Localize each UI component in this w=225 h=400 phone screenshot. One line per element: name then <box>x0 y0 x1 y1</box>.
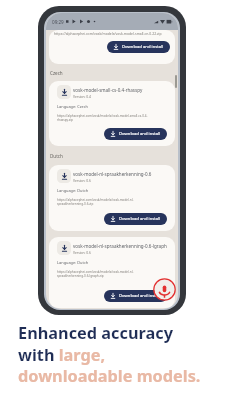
staticText: Version: 0.6 <box>73 178 91 182</box>
staticText: vosk-model-nl-spraakherkenning-0.6 <box>73 171 152 177</box>
staticText: Language: Dutch <box>57 188 89 193</box>
button[interactable]: Voice input <box>153 278 176 301</box>
staticText: vosk-model-nl-spraakherkenning-0.6-lgrap… <box>73 243 167 249</box>
staticText: Download and install <box>119 293 161 299</box>
button[interactable]: https://alphacephei.com/vosk/models/vosk… <box>49 30 175 64</box>
staticText: https://alphacephei.com/vosk/models/vosk… <box>57 114 158 122</box>
staticText: Version: 0.6 <box>73 250 91 254</box>
staticText: Download and install <box>119 131 161 137</box>
staticText: https://alphacephei.com/vosk/models/vosk… <box>57 198 158 206</box>
staticText: 09:29 <box>52 19 64 25</box>
button[interactable]: vosk-model-nl-spraakherkenning-0.6-lgrap… <box>49 237 175 308</box>
staticText: Download and install <box>119 216 161 222</box>
staticText: Enhanced accuracy with large, downloadab… <box>18 322 224 386</box>
button[interactable]: Download and install <box>104 128 167 140</box>
staticText: https://alphacephei.com/vosk/models/vosk… <box>57 270 158 278</box>
button[interactable]: vosk-model-nl-spraakherkenning-0.6 <box>49 165 175 231</box>
button[interactable]: Download and install <box>107 41 170 53</box>
button[interactable]: vosk-model-small-cs-0.4-rhasspy <box>49 81 175 146</box>
staticText: Dutch <box>50 153 63 159</box>
staticText: Language: Dutch <box>57 260 89 265</box>
staticText: Version: 0.4 <box>73 94 91 98</box>
staticText: Download and install <box>122 44 164 50</box>
staticText: https://alphacephei.com/vosk/models/vosk… <box>54 31 162 36</box>
staticText: vosk-model-small-cs-0.4-rhasspy <box>73 87 143 93</box>
button[interactable]: Download and install <box>104 213 167 225</box>
staticText: Language: Czech <box>57 104 88 109</box>
staticText: Czech <box>50 70 63 76</box>
button[interactable]: Download and install <box>104 290 167 302</box>
